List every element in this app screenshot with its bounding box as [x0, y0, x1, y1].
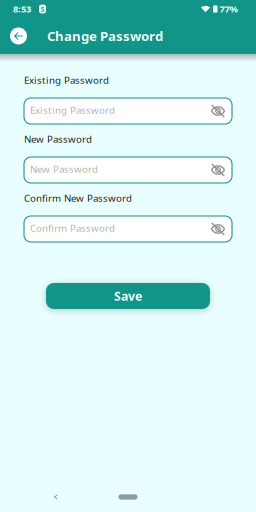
- staticText: Save: [114, 288, 142, 304]
- staticText: Change Password: [47, 27, 163, 45]
- staticText: New Password: [30, 162, 98, 176]
- button[interactable]: Save: [46, 283, 210, 309]
- button[interactable]: Back: [46, 486, 66, 508]
- staticText: 77%: [219, 3, 237, 15]
- staticText: 8:53: [13, 3, 31, 15]
- staticText: Existing Password: [30, 103, 115, 117]
- button[interactable]: New Password: [24, 157, 232, 183]
- button[interactable]: Back: [10, 27, 27, 44]
- staticText: Confirm New Password: [24, 191, 132, 205]
- staticText: S: [40, 4, 44, 14]
- button[interactable]: Existing Password: [24, 98, 232, 124]
- staticText: New Password: [24, 132, 92, 146]
- staticText: Confirm Password: [30, 221, 115, 235]
- button[interactable]: Confirm Password: [24, 216, 232, 242]
- staticText: Existing Password: [24, 73, 109, 87]
